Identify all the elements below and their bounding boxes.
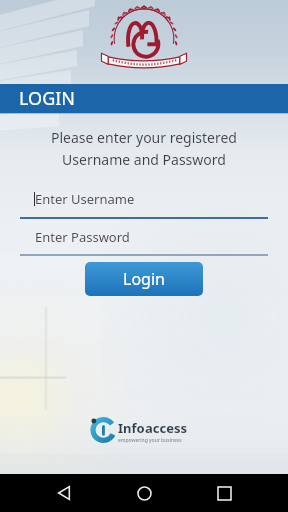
staticText: Enter Username: [35, 190, 135, 208]
button[interactable]: Recent apps: [204, 474, 244, 512]
staticText: Username and Password: [62, 150, 226, 169]
staticText: Info: [118, 419, 145, 437]
staticText: empowering your business: [118, 437, 182, 444]
button[interactable]: Home: [124, 474, 164, 512]
staticText: access: [145, 419, 188, 437]
button[interactable]: Enter Password: [20, 228, 268, 256]
staticText: Enter Password: [35, 228, 130, 246]
button[interactable]: Back: [44, 474, 84, 512]
button[interactable]: Enter Username: [20, 190, 268, 219]
staticText: LOGIN: [19, 86, 76, 111]
button[interactable]: Login: [85, 262, 203, 296]
staticText: Login: [123, 268, 165, 290]
staticText: Please enter your registered: [51, 128, 237, 147]
